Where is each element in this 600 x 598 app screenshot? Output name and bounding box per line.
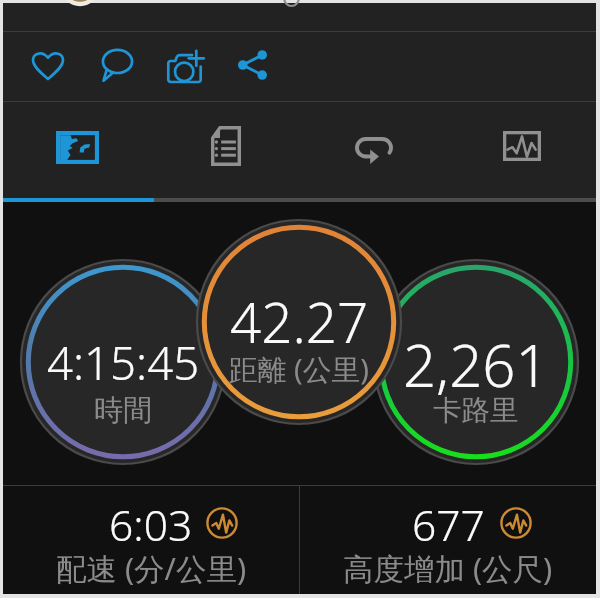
staticText: 距離 (公里) (229, 349, 369, 388)
button[interactable]: Analysis (448, 102, 596, 198)
button[interactable]: 6:03 (3, 486, 299, 594)
staticText: 2,261 (403, 325, 549, 404)
staticText: 時間 (94, 392, 152, 429)
button[interactable]: Splits (152, 102, 300, 198)
button[interactable]: 2,261 (373, 259, 579, 465)
button[interactable]: Map (3, 102, 152, 198)
staticText: 677 (412, 496, 485, 554)
staticText: 4:15:45 (47, 331, 200, 393)
button[interactable]: Share (225, 38, 279, 92)
button[interactable]: Like (21, 38, 75, 92)
staticText: 高度增加 (公尺) (343, 547, 553, 589)
button[interactable]: Add photo (158, 40, 212, 94)
button[interactable]: 4:15:45 (20, 259, 226, 465)
button[interactable]: Comment (90, 38, 144, 92)
button[interactable]: 677 (300, 486, 596, 594)
button[interactable]: 42.27 (196, 219, 402, 425)
staticText: 6:03 (109, 496, 193, 554)
staticText: 配速 (分/公里) (56, 547, 247, 589)
staticText: 42.27 (230, 285, 369, 360)
staticText: 卡路里 (433, 393, 519, 429)
button[interactable]: Laps (300, 102, 448, 198)
